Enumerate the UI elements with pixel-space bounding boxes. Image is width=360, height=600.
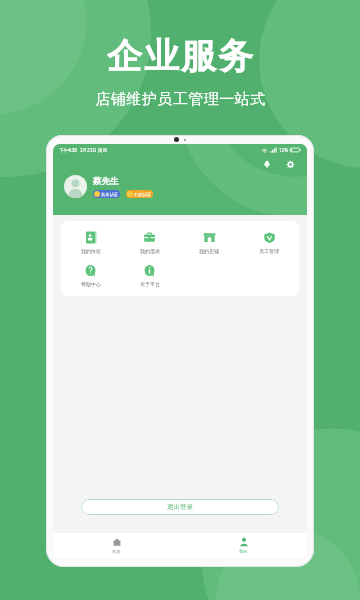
button[interactable]: 我的快应 — [61, 229, 120, 255]
button[interactable]: 帮助中心 — [61, 262, 120, 288]
staticText: 下午4:36 — [59, 147, 77, 153]
staticText: 2月23日 周四 — [80, 147, 107, 153]
staticText: 我的快应 — [81, 248, 101, 254]
button[interactable]: 关于平台 — [120, 262, 179, 288]
staticText: 帮助中心 — [81, 281, 101, 287]
staticText: 退出登录 — [167, 503, 193, 511]
button[interactable]: 首页 — [53, 533, 180, 558]
button[interactable]: 我的 — [180, 533, 307, 558]
staticText: 关于平台 — [140, 281, 160, 287]
button[interactable]: Settings — [283, 157, 297, 171]
staticText: 我的需求 — [140, 248, 160, 254]
staticText: 首页 — [112, 549, 121, 554]
button[interactable]: 我的店铺 — [179, 229, 239, 255]
button[interactable]: 实名认证 — [94, 190, 119, 198]
staticText: 工匠认证 — [134, 192, 151, 197]
staticText: 蔡先生 — [93, 176, 119, 187]
button[interactable]: 工匠认证 — [127, 190, 152, 198]
staticText: 实名认证 — [101, 192, 118, 197]
staticText: 企业服务 — [106, 34, 254, 78]
staticText: 我的 — [239, 549, 248, 554]
button[interactable]: 我的需求 — [120, 229, 179, 255]
button[interactable]: 退出登录 — [81, 499, 279, 515]
staticText: 我的店铺 — [199, 248, 219, 254]
button[interactable]: 蔡先生 — [64, 175, 307, 198]
button[interactable]: 员工管理 — [239, 229, 299, 255]
button[interactable]: Notifications — [260, 157, 274, 171]
staticText: 员工管理 — [259, 248, 279, 254]
staticText: 12% — [279, 147, 288, 153]
staticText: 店铺维护员工管理一站式 — [95, 90, 266, 109]
